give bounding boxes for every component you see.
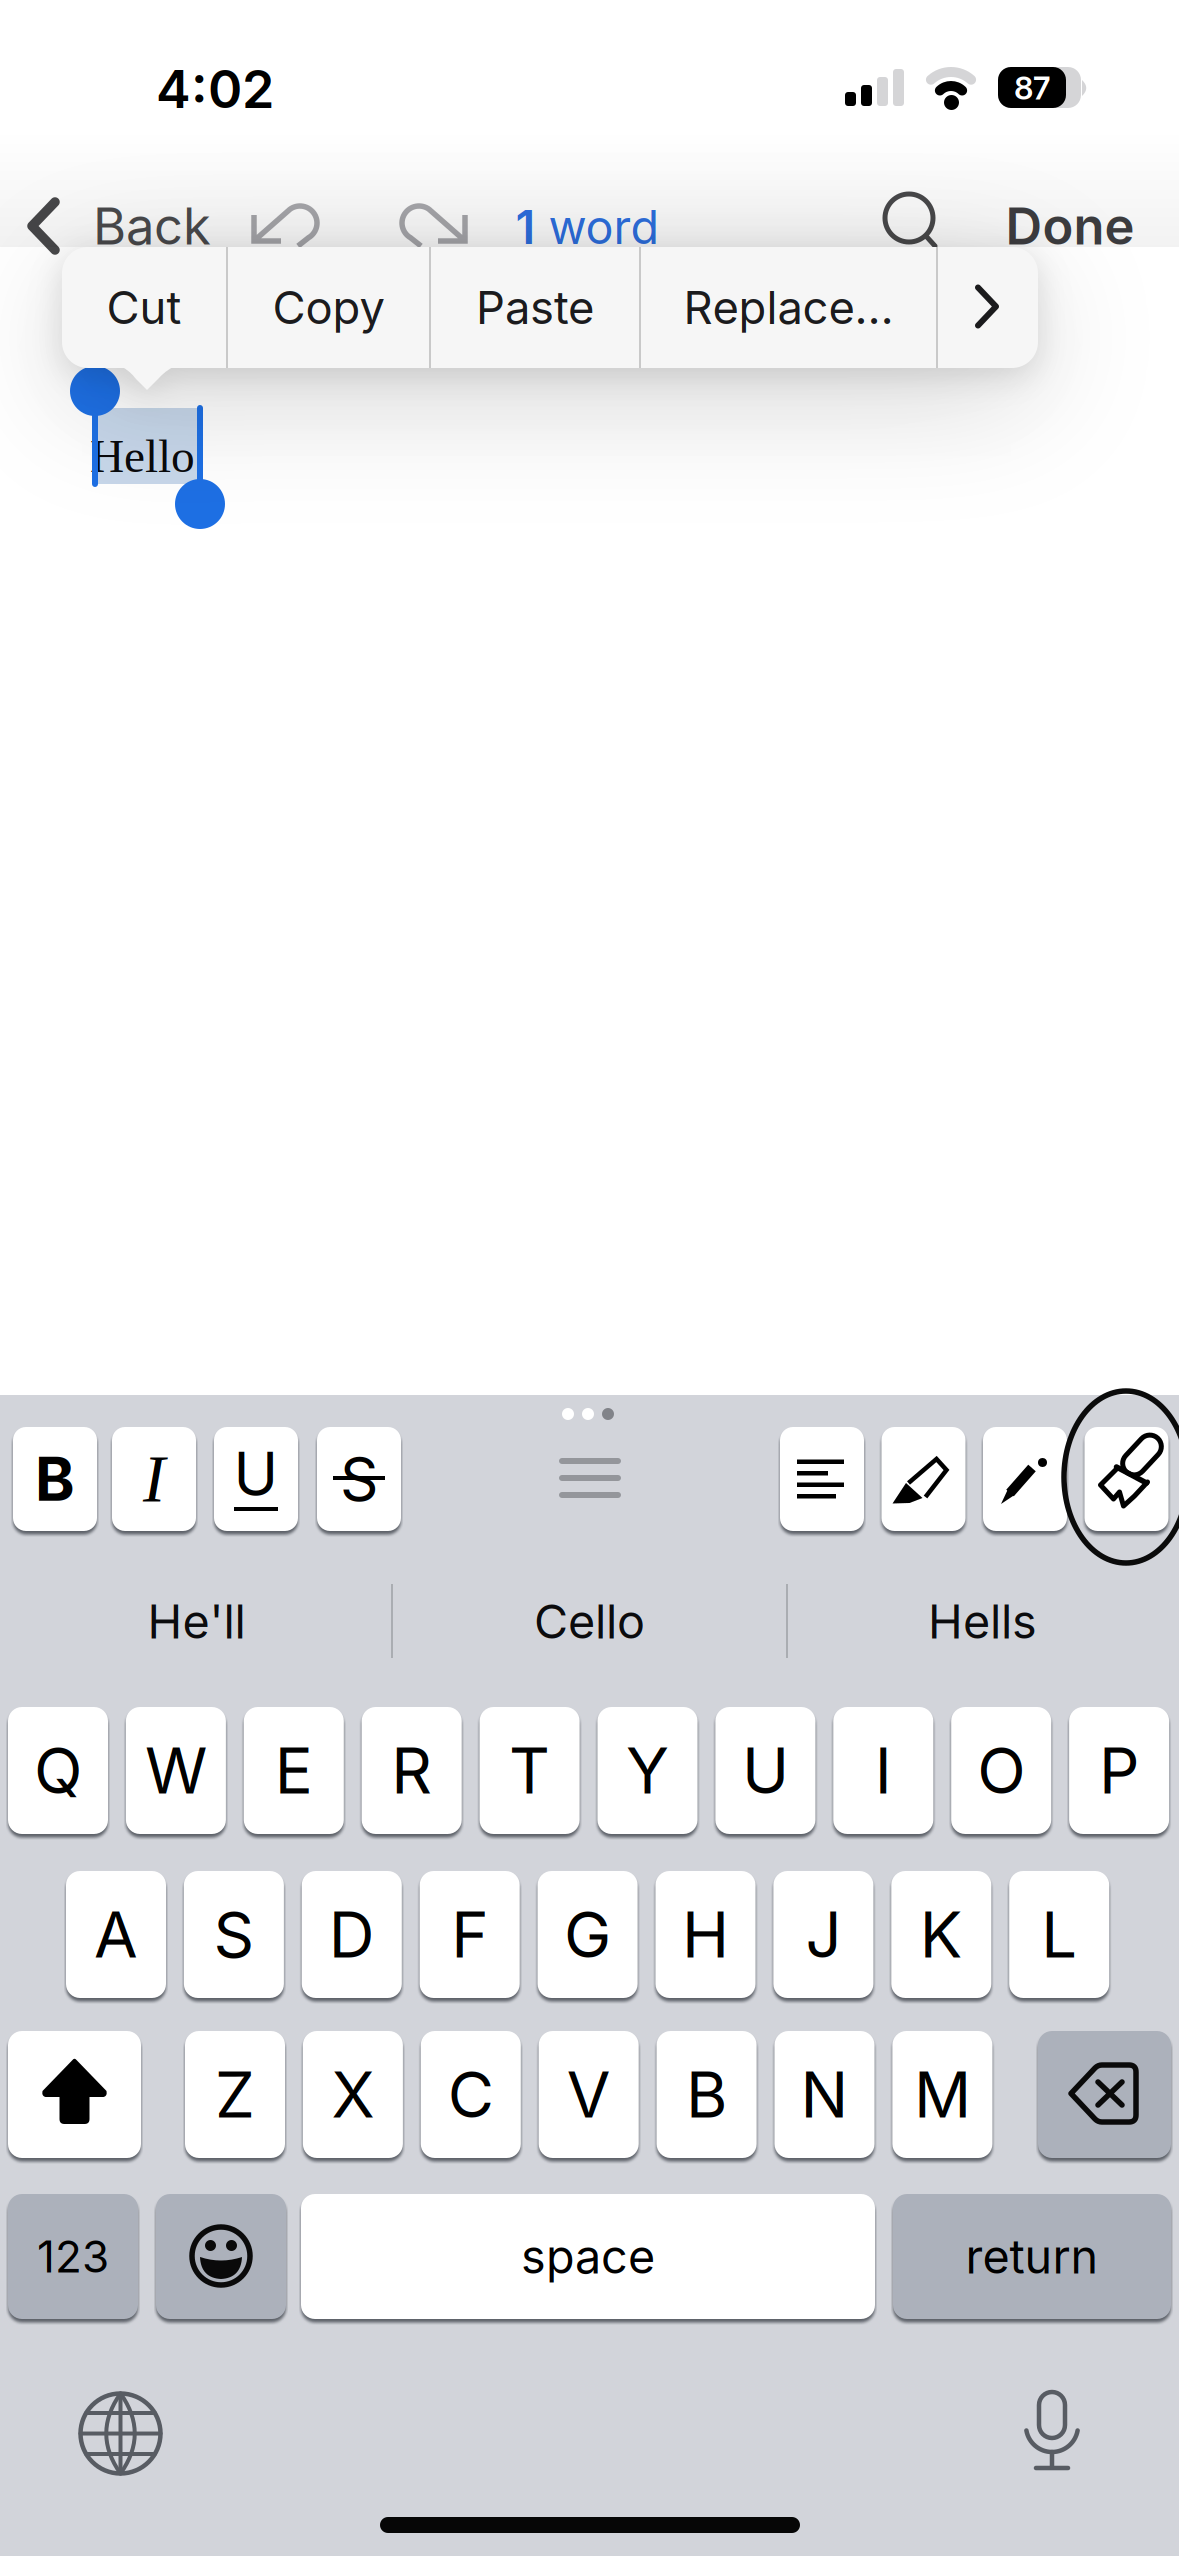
staticText: Q [34,1732,82,1809]
button[interactable]: Undo [244,199,318,255]
button[interactable]: Replace… [683,280,893,335]
button[interactable]: Dictate [1008,2388,1096,2478]
button[interactable]: Delete [1038,2031,1171,2158]
button[interactable]: Align [780,1427,864,1531]
staticText: Replace… [683,280,893,335]
staticText: C [448,2056,494,2133]
button[interactable]: return [893,2194,1171,2319]
staticText: 87 [1014,69,1050,107]
staticText: Cello [534,1593,645,1650]
staticText: Hells [928,1593,1037,1650]
button[interactable]: Paintbrush [1083,1427,1169,1531]
staticText: Z [215,2056,255,2133]
button[interactable]: Y [597,1707,697,1834]
button[interactable]: Done [1005,195,1134,257]
staticText: P [1099,1732,1139,1809]
staticText: W [145,1732,207,1809]
staticText: return [965,2228,1098,2285]
staticText: S [213,1896,254,1973]
button[interactable]: space [301,2194,875,2319]
staticText: Paste [476,280,594,335]
button[interactable]: A [66,1871,166,1998]
staticText: 123 [37,2230,109,2283]
staticText: Back [93,195,211,257]
button[interactable]: Back [20,194,220,258]
button[interactable]: Shift [8,2031,141,2158]
staticText: Done [1005,195,1134,257]
staticText: S [340,1443,378,1515]
staticText: R [391,1732,432,1809]
button[interactable]: X [303,2031,403,2158]
staticText: D [329,1896,375,1973]
staticText: F [451,1896,488,1973]
staticText: I [875,1732,892,1809]
button[interactable]: Redo [401,199,475,255]
button[interactable]: Copy [272,280,384,335]
button[interactable]: E [244,1707,344,1834]
button[interactable]: D [302,1871,402,1998]
staticText: L [1041,1896,1077,1973]
button[interactable]: N [774,2031,874,2158]
button[interactable]: He'll [147,1593,245,1650]
button[interactable]: Highlight [881,1427,965,1531]
staticText: X [331,2056,374,2133]
staticText: T [509,1732,550,1809]
button[interactable]: G [538,1871,638,1998]
button[interactable]: V [539,2031,639,2158]
button[interactable]: Q [8,1707,108,1834]
button[interactable]: O [951,1707,1051,1834]
staticText: G [564,1896,611,1973]
button[interactable]: Underline [214,1427,298,1531]
button[interactable]: 123 [8,2194,138,2319]
button[interactable]: Pen [983,1427,1067,1531]
staticText: space [521,2228,655,2285]
staticText: H [682,1896,729,1973]
button[interactable]: Search [880,190,942,256]
staticText: V [567,2056,611,2133]
button[interactable]: Strikethrough [317,1427,401,1531]
staticText: Hello [90,430,195,482]
button[interactable]: Emoji [156,2194,286,2319]
button[interactable]: R [362,1707,462,1834]
button[interactable]: T [480,1707,580,1834]
button[interactable]: Italic [112,1427,196,1531]
button[interactable]: C [421,2031,521,2158]
button[interactable]: J [773,1871,873,1998]
button[interactable]: B [657,2031,757,2158]
button[interactable]: F [420,1871,520,1998]
staticText: B [686,2056,727,2133]
button[interactable]: Z [185,2031,285,2158]
button[interactable]: M [892,2031,992,2158]
staticText: Cut [106,280,181,335]
staticText: 1 word [515,199,659,255]
button[interactable]: 1 word [515,199,659,255]
button[interactable]: Bold [13,1427,97,1531]
button[interactable]: Paste [476,280,594,335]
button[interactable]: Hells [928,1593,1037,1650]
button[interactable]: Cut [106,280,181,335]
button[interactable]: L [1009,1871,1109,1998]
button[interactable]: I [833,1707,933,1834]
staticText: J [805,1896,841,1973]
button[interactable]: More [978,287,998,327]
button[interactable]: P [1069,1707,1169,1834]
staticText: K [920,1896,963,1973]
staticText: A [94,1896,138,1973]
staticText: B [35,1443,75,1515]
staticText: M [914,2056,971,2133]
button[interactable]: Cello [534,1593,645,1650]
staticText: U [233,1438,278,1510]
staticText: N [800,2056,848,2133]
button[interactable]: Next keyboard [78,2391,163,2476]
staticText: E [275,1732,313,1809]
staticText: O [977,1732,1025,1809]
button[interactable]: S [184,1871,284,1998]
button[interactable]: U [715,1707,815,1834]
staticText: 4:02 [156,57,274,120]
button[interactable]: W [126,1707,226,1834]
staticText: He'll [147,1593,245,1650]
button[interactable]: H [655,1871,755,1998]
button[interactable]: K [891,1871,991,1998]
staticText: I [143,1442,165,1516]
staticText: Copy [272,280,384,335]
